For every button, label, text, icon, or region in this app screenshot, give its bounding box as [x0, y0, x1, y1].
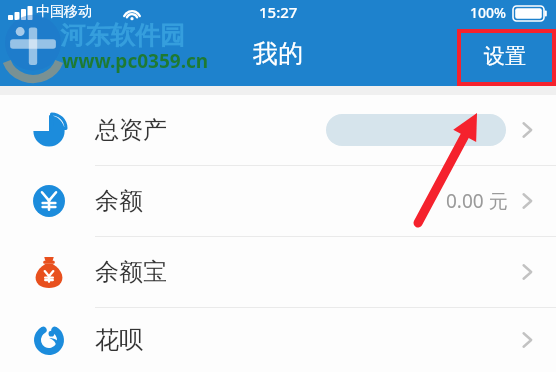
button[interactable]: 花呗 [0, 307, 556, 372]
staticText: 中国移动 [36, 3, 92, 21]
button[interactable]: 设置 [472, 36, 538, 76]
staticText: 100% [470, 3, 506, 22]
staticText: 设置 [484, 43, 526, 69]
button[interactable]: 余额 [0, 165, 556, 236]
staticText: 0.00 元 [446, 188, 508, 214]
staticText: 余额 [95, 186, 143, 216]
staticText: 余额宝 [95, 257, 167, 287]
staticText: 河东软件园 [60, 20, 185, 51]
staticText: 15:27 [259, 2, 298, 22]
staticText: 我的 [253, 38, 303, 69]
staticText: 总资产 [95, 115, 167, 145]
button[interactable]: 余额宝 [0, 236, 556, 307]
staticText: 花呗 [95, 325, 143, 355]
staticText: www.pc0359.cn [62, 48, 209, 74]
button[interactable]: 总资产 [0, 95, 556, 165]
